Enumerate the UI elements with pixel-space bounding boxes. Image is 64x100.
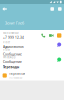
- staticText: WhatsApp: [3, 56, 16, 59]
- button[interactable]: WhatsApp: [0, 56, 64, 63]
- staticText: Viber: [3, 48, 10, 52]
- button[interactable]: Viber: [0, 41, 64, 48]
- button[interactable]: Back: [0, 4, 9, 14]
- staticText: Переводы: [3, 65, 20, 69]
- staticText: Аудиозвонок: [3, 44, 24, 49]
- staticText: Зенит Глеб: [5, 21, 24, 25]
- staticText: Перевести: [9, 72, 25, 76]
- staticText: Сообщение: [3, 52, 22, 56]
- button[interactable]: Edit contact: [48, 4, 56, 14]
- staticText: Viber: [3, 41, 10, 44]
- button[interactable]: Перевести: [0, 70, 64, 80]
- staticText: Сообщение: [3, 59, 22, 64]
- button[interactable]: Viber: [0, 48, 64, 56]
- staticText: По телефону: [9, 76, 22, 79]
- staticText: Мобильный: [3, 31, 19, 35]
- button[interactable]: Мобильный: [0, 30, 64, 41]
- button[interactable]: More options: [56, 4, 64, 14]
- staticText: +7 999 12-34: [3, 35, 24, 40]
